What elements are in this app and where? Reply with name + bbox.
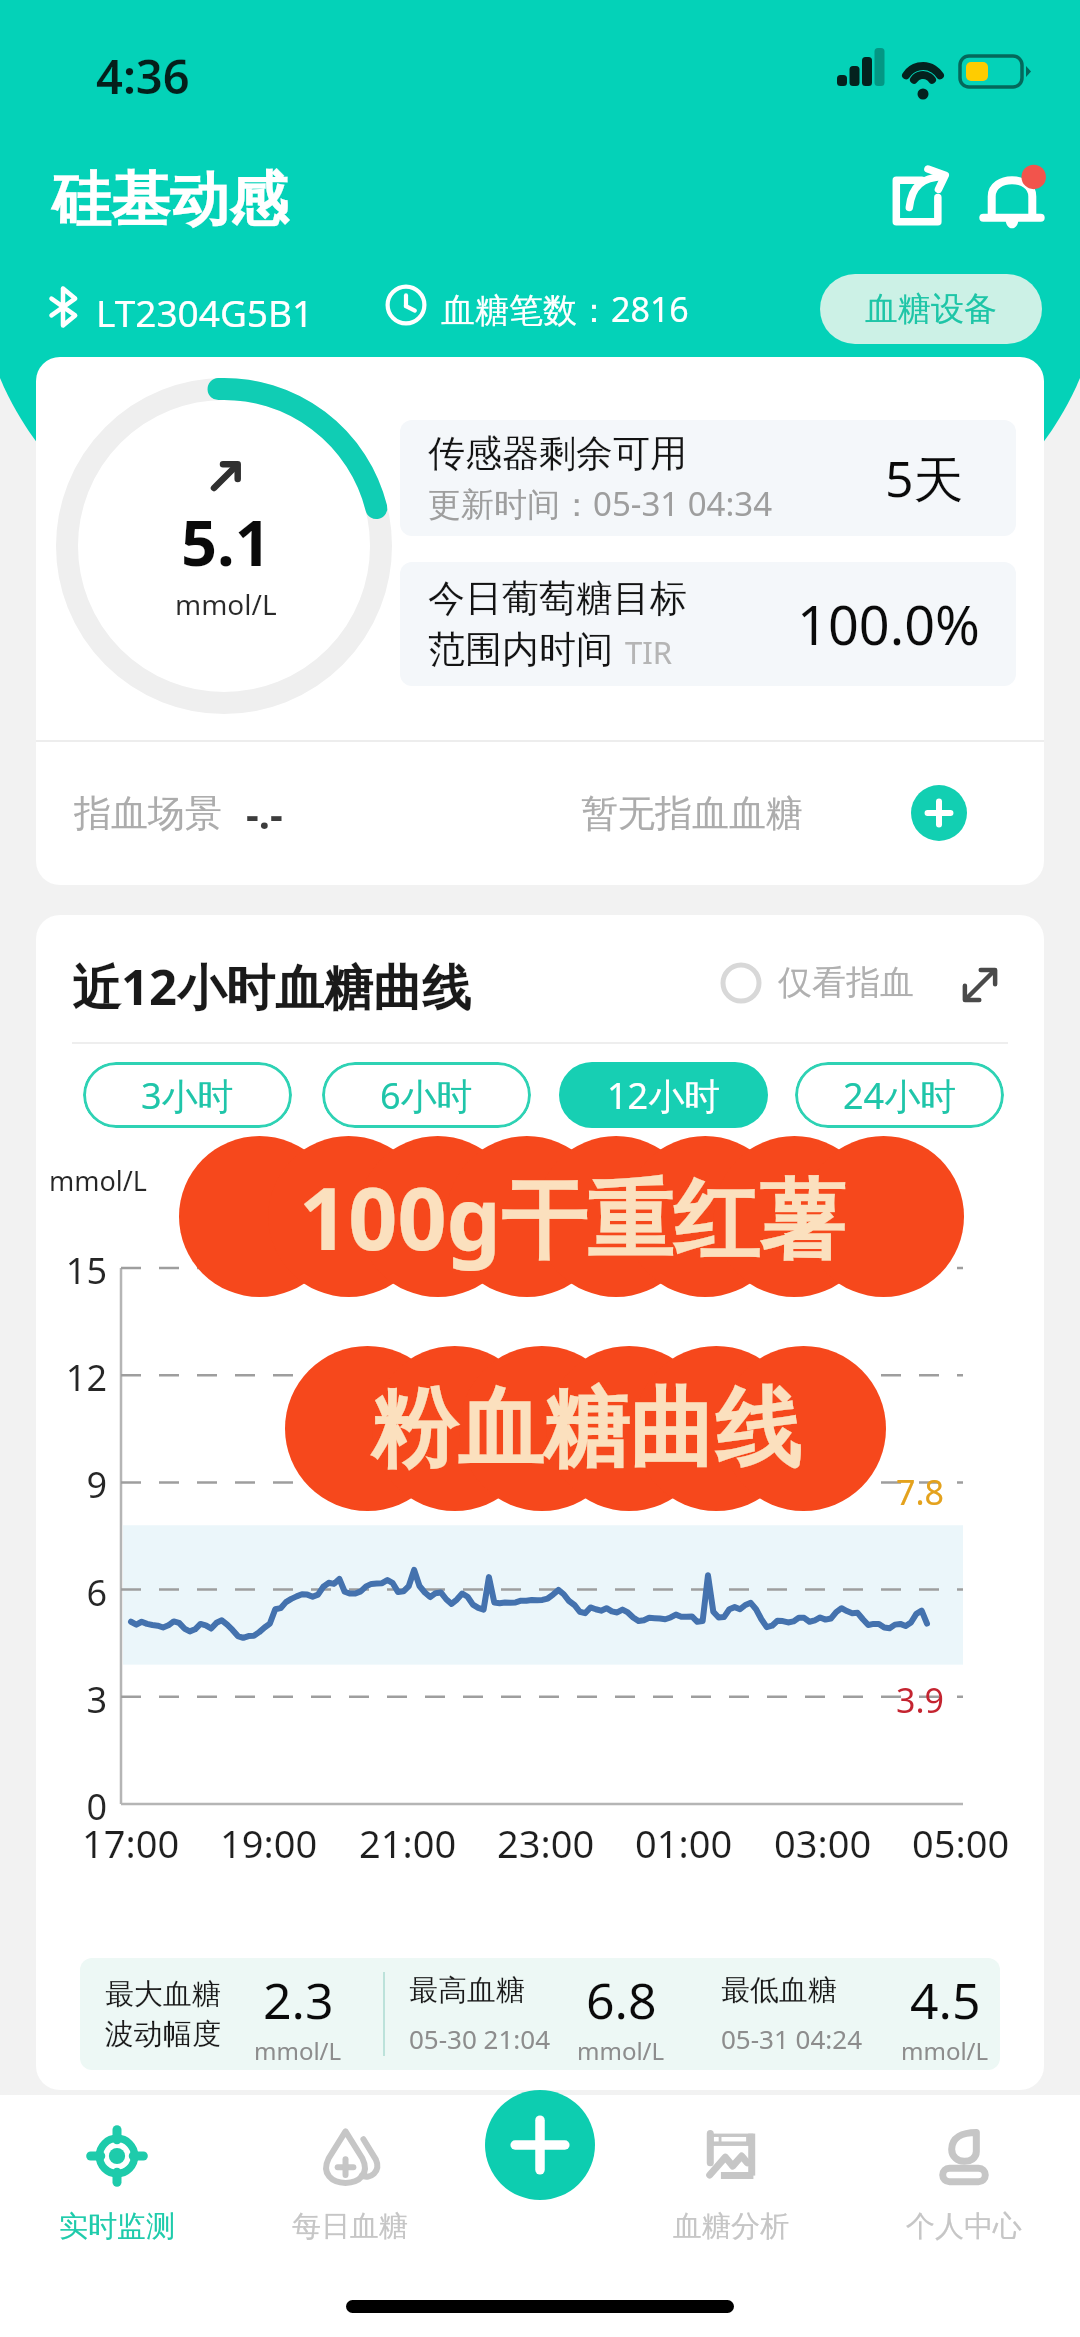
button[interactable]: 每日血糖 [233,2095,466,2337]
button[interactable]: 血糖分析 [614,2095,847,2337]
staticText: 暂无指血血糖 [581,790,803,837]
button[interactable]: Expand chart [952,957,1008,1013]
staticText: 最大血糖 波动幅度 [105,1976,221,2052]
staticText: 0 [55,1782,107,1831]
button[interactable]: 血糖设备 [820,274,1042,344]
button[interactable]: 实时监测 [0,2095,233,2337]
staticText: 5.1 [181,499,271,585]
staticText: 2.3 [263,1966,334,2034]
staticText: 03:00 [774,1817,872,1869]
staticText: 实时监测 [59,2208,175,2245]
staticText: 指血场景 [74,790,222,837]
staticText: mmol/L [901,2034,989,2067]
staticText: 05-30 21:04 [409,2021,551,2056]
staticText: 05-31 04:24 [721,2021,863,2056]
staticText: 6小时 [380,1071,473,1120]
staticText: 9 [55,1460,107,1509]
staticText: 血糖分析 [673,2208,789,2245]
staticText: -.- [246,786,283,840]
button[interactable]: 个人中心 [847,2095,1080,2337]
staticText: 3.9 [896,1677,945,1723]
staticText: 15 [55,1246,107,1295]
staticText: 23:00 [497,1817,595,1869]
staticText: 硅基动感 [52,163,288,237]
staticText: 4.5 [910,1966,981,2034]
button[interactable]: 今日葡萄糖目标 [400,562,1016,686]
button[interactable]: 仅看指血 [720,961,914,1004]
button[interactable]: 6小时 [322,1062,531,1128]
button[interactable]: 12小时 [559,1062,768,1128]
staticText: 12 [55,1353,107,1402]
staticText: 每日血糖 [292,2208,408,2245]
staticText: 更新时间：05-31 04:34 [428,481,773,526]
staticText: 传感器剩余可用 [428,430,687,477]
staticText: mmol/L [577,2034,665,2067]
button[interactable]: Share [868,150,968,250]
staticText: 5天 [885,444,964,512]
staticText: 100g干重红薯 [299,1158,845,1275]
staticText: 今日葡萄糖目标 [428,575,687,622]
button[interactable]: Notifications [962,150,1062,250]
staticText: 100.0% [797,587,980,661]
staticText: 3 [55,1675,107,1724]
staticText: 24小时 [843,1071,957,1120]
button[interactable]: Add finger stick reading [911,785,967,841]
staticText: mmol/L [49,1162,147,1199]
staticText: mmol/L [175,585,277,623]
staticText: 3小时 [141,1071,234,1120]
staticText: 17:00 [82,1817,180,1869]
staticText: 最低血糖 [721,1972,837,2009]
staticText: 19:00 [220,1817,318,1869]
button[interactable]: 3小时 [83,1062,292,1128]
button[interactable]: Add record [485,2090,595,2200]
staticText: 4:36 [96,44,190,108]
staticText: 7.8 [896,1469,945,1515]
button[interactable]: 传感器剩余可用 [400,420,1016,536]
staticText: 血糖笔数：2816 [441,286,689,332]
staticText: 仅看指血 [778,961,914,1004]
staticText: 个人中心 [906,2208,1022,2245]
staticText: 21:00 [359,1817,457,1869]
staticText: 12小时 [607,1071,721,1120]
staticText: TIR [625,631,673,673]
staticText: 血糖设备 [865,288,997,330]
button[interactable]: 指血场景 [36,741,1044,885]
staticText: LT2304G5B1 [96,287,314,337]
staticText: mmol/L [254,2034,342,2067]
staticText: 6 [55,1568,107,1617]
button[interactable]: 24小时 [795,1062,1004,1128]
staticText: 05:00 [912,1817,1010,1869]
staticText: 6.8 [586,1966,657,2034]
staticText: 近12小时血糖曲线 [72,953,472,1020]
staticText: 01:00 [635,1817,733,1869]
staticText: 最高血糖 [409,1972,525,2009]
staticText: 范围内时间 [428,626,613,673]
staticText: 粉血糖曲线 [371,1375,801,1483]
